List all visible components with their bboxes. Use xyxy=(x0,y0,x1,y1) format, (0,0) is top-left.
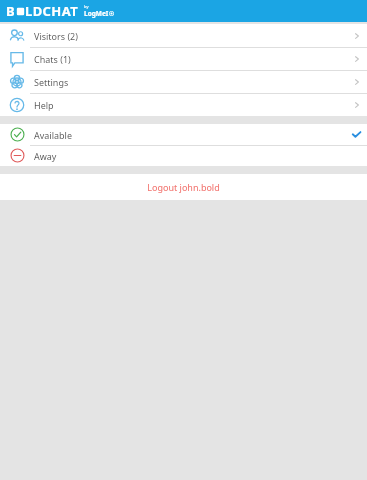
staticText: Visitors (2) xyxy=(34,30,78,42)
staticText: by xyxy=(84,4,89,9)
button[interactable]: Available xyxy=(0,124,367,145)
button[interactable]: Settings xyxy=(0,70,367,93)
button[interactable]: Chats (1) xyxy=(0,47,367,70)
button[interactable]: Help xyxy=(0,93,367,116)
staticText: Logout john.bold xyxy=(147,181,220,193)
staticText: Away xyxy=(34,150,57,162)
staticText: LDCHAT xyxy=(25,2,79,20)
button[interactable]: Visitors (2) xyxy=(0,24,367,47)
staticText: Help xyxy=(34,99,54,111)
other: Selected xyxy=(351,129,362,140)
staticText: Chats (1) xyxy=(34,53,71,65)
button[interactable]: Logout john.bold xyxy=(0,174,367,200)
staticText: B xyxy=(6,2,16,20)
staticText: Available xyxy=(34,129,72,141)
staticText: LogMeI xyxy=(84,9,109,18)
staticText: Settings xyxy=(34,76,69,88)
button[interactable]: Away xyxy=(0,145,367,166)
